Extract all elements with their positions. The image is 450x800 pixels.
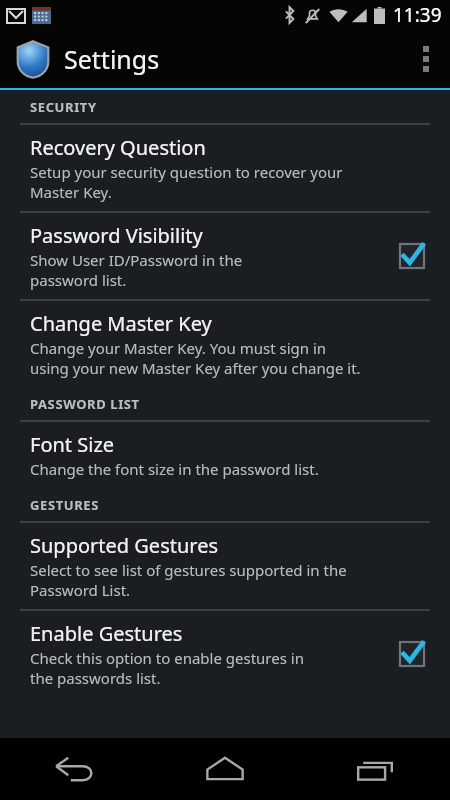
staticText: Change Master Key bbox=[30, 310, 212, 337]
staticText: Settings bbox=[64, 42, 160, 76]
staticText: Supported Gestures bbox=[30, 532, 219, 559]
button[interactable]: Recent apps bbox=[300, 738, 450, 800]
button[interactable]: Password Visibility bbox=[0, 213, 450, 299]
staticText: GESTURES bbox=[30, 496, 99, 514]
staticText: Recovery Question bbox=[30, 134, 206, 161]
staticText: PASSWORD LIST bbox=[30, 395, 140, 413]
staticText: SECURITY bbox=[30, 98, 97, 116]
button[interactable]: Enable Gestures bbox=[0, 611, 450, 697]
button[interactable]: Back bbox=[0, 738, 150, 800]
staticText: Setup your security question to recover … bbox=[30, 162, 343, 202]
button[interactable]: Change Master Key bbox=[0, 301, 450, 387]
button[interactable]: Recovery Question bbox=[0, 125, 450, 211]
staticText: Font Size bbox=[30, 431, 115, 458]
staticText: Show User ID/Password in the password li… bbox=[30, 250, 243, 290]
button[interactable]: More options bbox=[402, 30, 450, 88]
button[interactable]: Font Size bbox=[0, 422, 450, 488]
staticText: Password Visibility bbox=[30, 222, 203, 249]
staticText: Enable Gestures bbox=[30, 620, 183, 647]
staticText: Select to see list of gestures supported… bbox=[30, 560, 347, 600]
staticText: Check this option to enable gestures in … bbox=[30, 648, 304, 688]
staticText: 11:39 bbox=[393, 2, 442, 28]
staticText: Change your Master Key. You must sign in… bbox=[30, 338, 361, 378]
button[interactable]: Home bbox=[150, 738, 300, 800]
button[interactable]: Enable Gestures bbox=[390, 632, 434, 676]
button[interactable]: Supported Gestures bbox=[0, 523, 450, 609]
button[interactable]: Password Visibility bbox=[390, 234, 434, 278]
staticText: Change the font size in the password lis… bbox=[30, 459, 319, 479]
